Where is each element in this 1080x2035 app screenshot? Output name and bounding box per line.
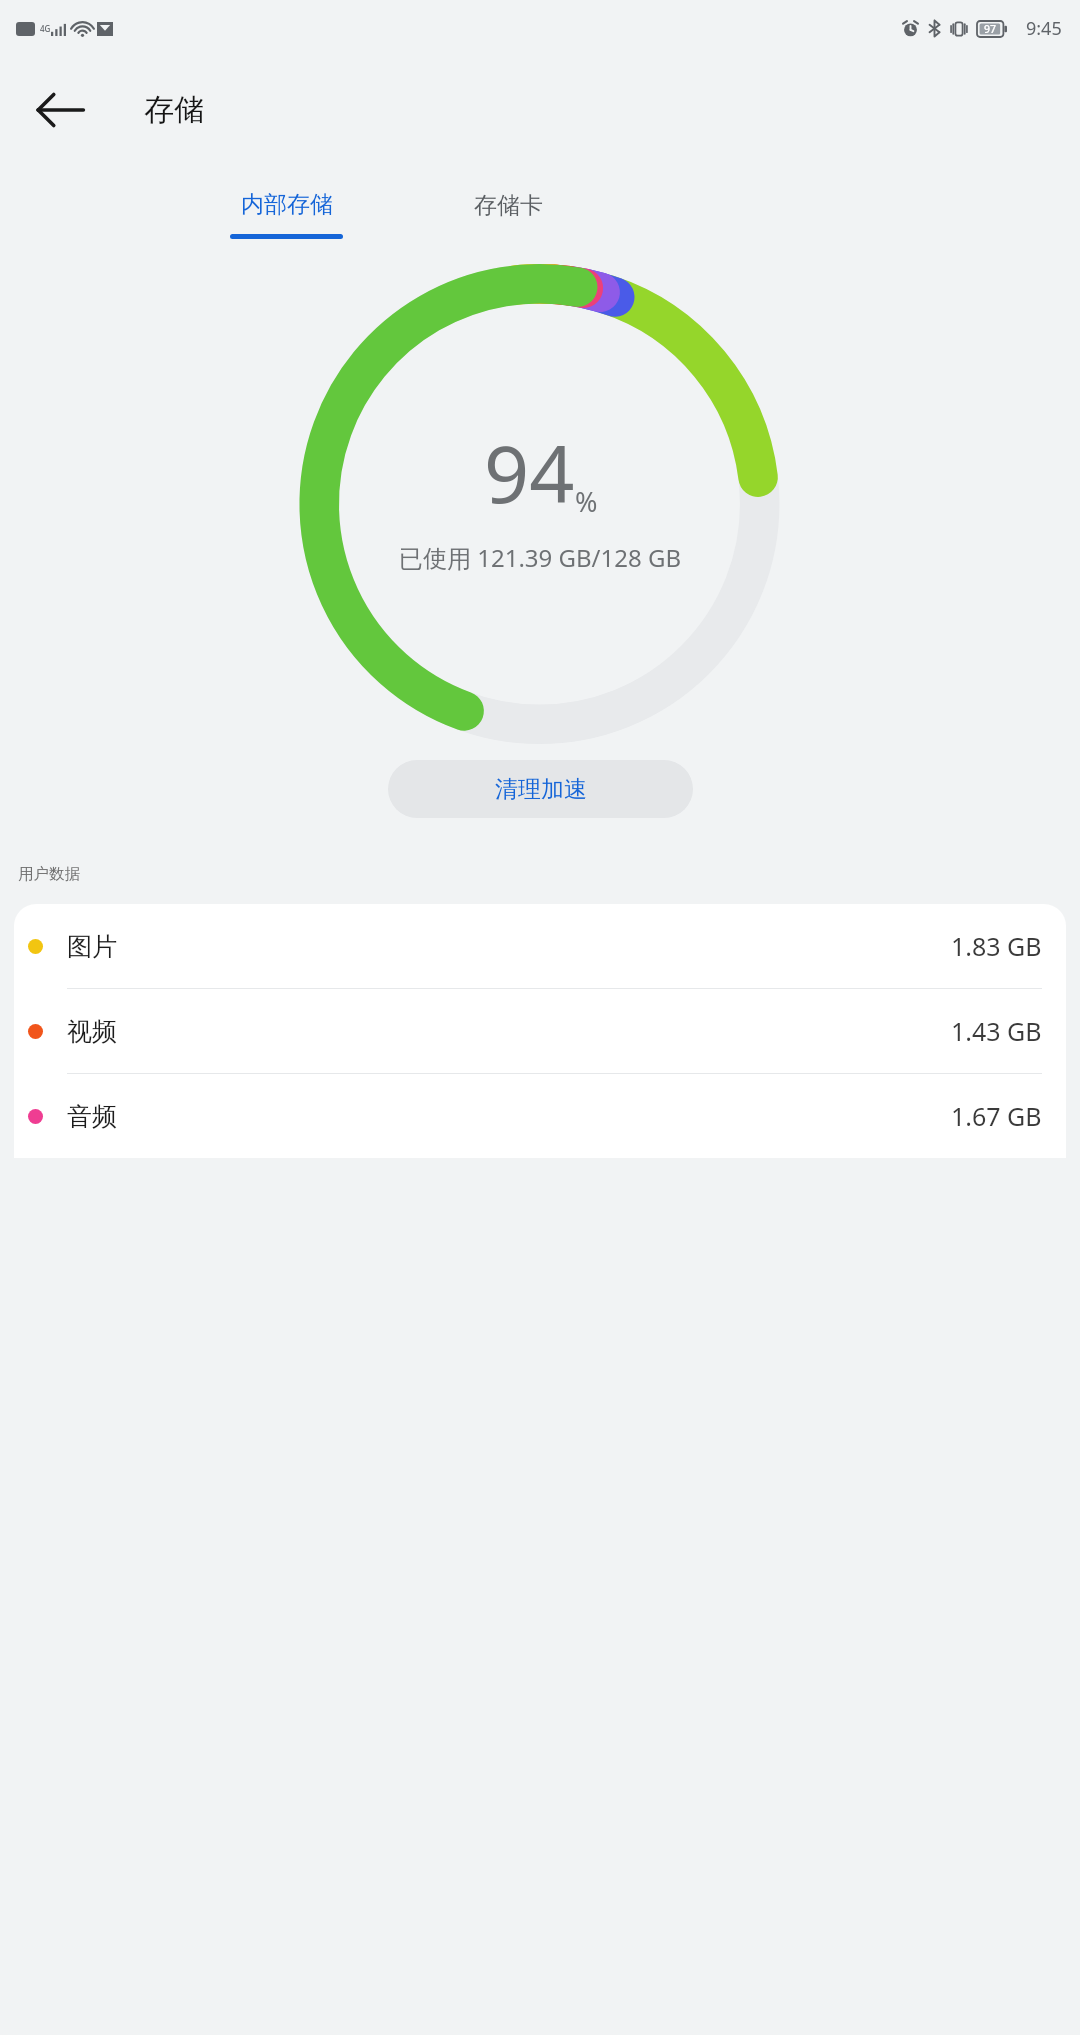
button[interactable]: 清理加速	[388, 760, 693, 818]
button[interactable]: 音频	[14, 1074, 1066, 1158]
staticText: 9:45	[1026, 16, 1062, 41]
button[interactable]: 存储卡	[466, 185, 551, 226]
staticText: 已使用 121.39 GB/128 GB	[399, 541, 682, 574]
staticText: 1.83 GB	[951, 929, 1042, 963]
staticText: %	[575, 483, 598, 520]
button[interactable]: Back	[34, 84, 86, 136]
staticText: 清理加速	[495, 775, 587, 804]
staticText: 94	[484, 419, 575, 527]
staticText: 97	[984, 22, 997, 36]
staticText: 音频	[67, 1101, 117, 1132]
button[interactable]: 视频	[14, 989, 1066, 1074]
staticText: 1.43 GB	[951, 1014, 1042, 1048]
staticText: 用户数据	[18, 864, 80, 884]
staticText: 内部存储	[241, 190, 333, 219]
staticText: 图片	[67, 931, 117, 962]
staticText: 存储卡	[474, 191, 543, 220]
button[interactable]: 内部存储	[235, 186, 339, 223]
staticText: 4G	[40, 23, 51, 34]
staticText: 视频	[67, 1016, 117, 1047]
staticText: 存储	[144, 91, 204, 129]
button[interactable]: 图片	[14, 904, 1066, 989]
staticText: 1.67 GB	[951, 1099, 1042, 1133]
